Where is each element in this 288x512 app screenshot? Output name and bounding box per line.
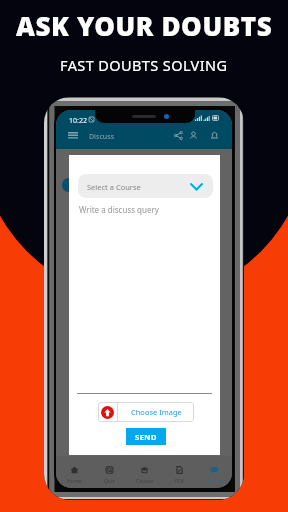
button[interactable]: Select a Course — [78, 174, 213, 198]
staticText: 10:22 — [69, 116, 87, 126]
staticText: PDF — [175, 477, 185, 484]
button[interactable]: PDF — [162, 456, 197, 488]
staticText: Discuss — [89, 132, 115, 142]
button[interactable]: Choose Image — [98, 402, 194, 422]
staticText: Choose Image — [131, 407, 182, 417]
staticText: Discuss — [205, 477, 224, 484]
staticText: Home — [67, 477, 82, 484]
staticText: FAST DOUBTS SOLVING — [60, 55, 228, 75]
button[interactable]: Quiz — [92, 456, 127, 488]
button[interactable]: SEND — [126, 428, 166, 445]
staticText: SEND — [135, 432, 157, 442]
button[interactable]: Discuss — [197, 456, 232, 488]
button[interactable]: Home — [56, 456, 92, 488]
button[interactable]: Profile — [189, 131, 198, 140]
button[interactable]: Menu — [68, 132, 78, 139]
staticText: Write a discuss query — [79, 204, 159, 215]
button[interactable]: Course — [127, 456, 162, 488]
staticText: Select a Course — [87, 182, 141, 192]
button[interactable]: Share — [174, 131, 183, 140]
staticText: ASK YOUR DOUBTS — [16, 8, 273, 43]
button[interactable]: Notifications — [210, 131, 219, 140]
staticText: Quiz — [104, 477, 116, 484]
staticText: Course — [136, 477, 154, 484]
